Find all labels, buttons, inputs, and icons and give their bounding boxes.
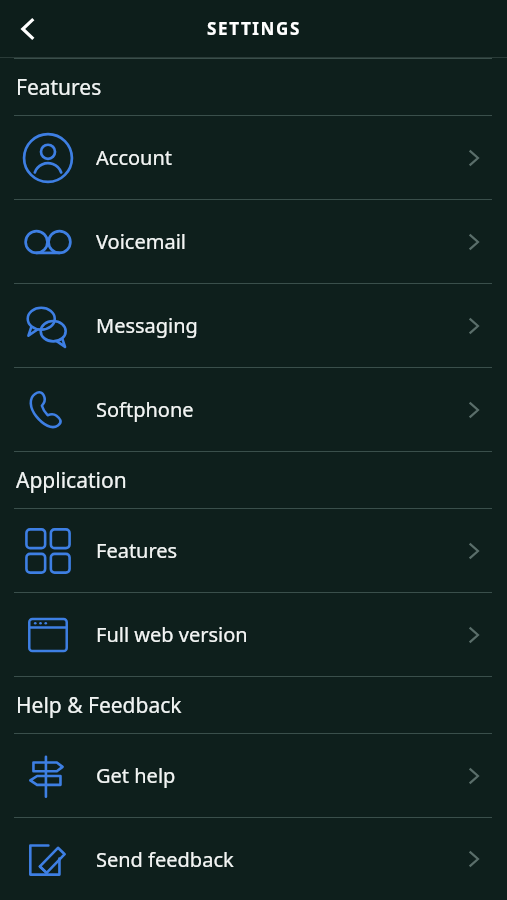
button[interactable]: Back bbox=[0, 1, 56, 57]
staticText: Application bbox=[16, 466, 127, 495]
button[interactable]: Features bbox=[0, 509, 507, 592]
staticText: Features bbox=[96, 537, 463, 564]
button[interactable]: Messaging bbox=[0, 284, 507, 367]
staticText: SETTINGS bbox=[207, 17, 301, 40]
staticText: Voicemail bbox=[96, 228, 463, 255]
button[interactable]: Get help bbox=[0, 734, 507, 817]
staticText: Send feedback bbox=[96, 846, 463, 873]
staticText: Messaging bbox=[96, 312, 463, 339]
staticText: Full web version bbox=[96, 621, 463, 648]
button[interactable]: Full web version bbox=[0, 593, 507, 676]
staticText: Help & Feedback bbox=[16, 691, 182, 720]
button[interactable]: Voicemail bbox=[0, 200, 507, 283]
staticText: Account bbox=[96, 144, 463, 171]
staticText: Features bbox=[16, 73, 102, 102]
button[interactable]: Send feedback bbox=[0, 818, 507, 900]
staticText: Softphone bbox=[96, 396, 463, 423]
button[interactable]: Account bbox=[0, 116, 507, 199]
staticText: Get help bbox=[96, 762, 463, 789]
button[interactable]: Softphone bbox=[0, 368, 507, 451]
